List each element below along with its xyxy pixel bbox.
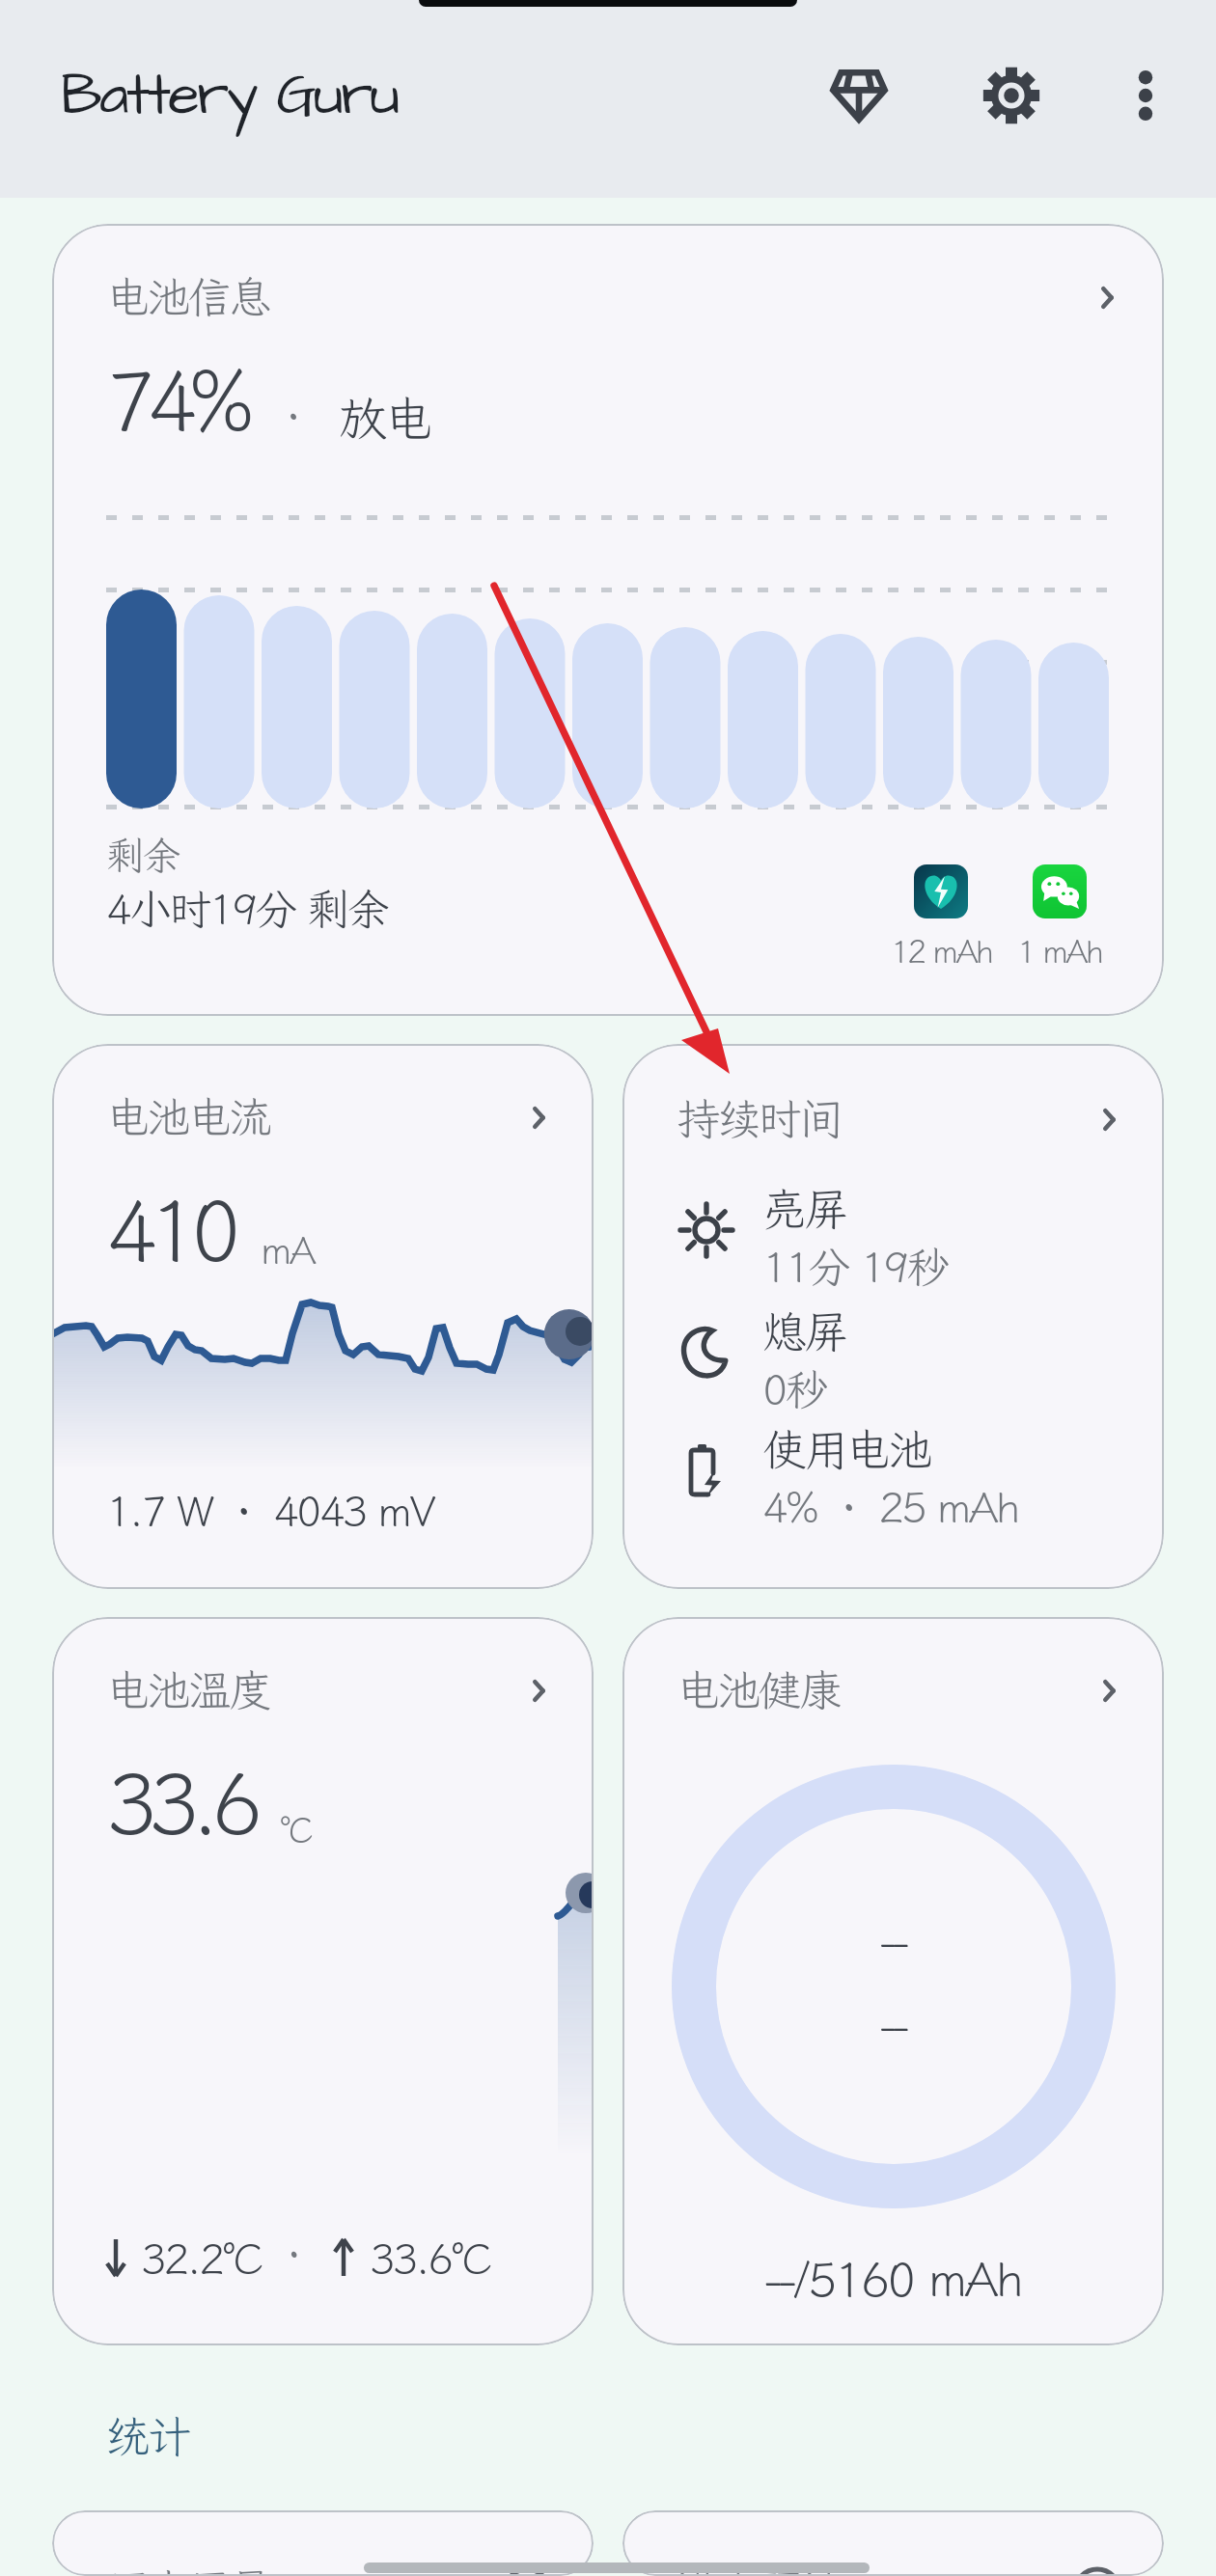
staticText: 电池信息 bbox=[106, 268, 270, 325]
staticText: 410 bbox=[106, 1173, 234, 1285]
staticText: 满电预计 bbox=[677, 2561, 841, 2576]
staticText: 12 mAh bbox=[891, 930, 992, 972]
staticText: -- bbox=[880, 1911, 907, 1970]
staticText: 放电 bbox=[339, 386, 430, 450]
staticText: 32.2ºC bbox=[141, 2231, 262, 2287]
button[interactable]: 历史用量 bbox=[52, 2510, 594, 2576]
staticText: 0秒 bbox=[762, 1361, 826, 1417]
button[interactable]: 电池电流 bbox=[52, 1044, 594, 1589]
staticText: 持续时间 bbox=[677, 1090, 841, 1147]
staticText: 统计 bbox=[105, 2407, 189, 2466]
button[interactable]: More options bbox=[1097, 47, 1194, 144]
button[interactable]: 电池信息 bbox=[52, 224, 1164, 1016]
staticText: -- bbox=[880, 1995, 907, 2054]
button[interactable]: 满电预计 bbox=[622, 2510, 1164, 2576]
staticText: mA bbox=[261, 1224, 315, 1275]
staticText: 11分 19秒 bbox=[762, 1239, 947, 1295]
staticText: 1.7 W · 4043 mV bbox=[106, 1483, 434, 1539]
staticText: 33.6 bbox=[106, 1746, 255, 1858]
staticText: 74% bbox=[106, 344, 246, 453]
staticText: 熄屏 bbox=[762, 1302, 846, 1361]
button[interactable]: 电池健康 bbox=[622, 1617, 1164, 2345]
staticText: 使用电池 bbox=[762, 1420, 930, 1479]
staticText: 33.6ºC bbox=[370, 2231, 490, 2287]
button[interactable]: Settings bbox=[953, 38, 1069, 153]
staticText: 剩余 bbox=[106, 830, 179, 881]
staticText: 电池温度 bbox=[106, 1661, 270, 1718]
staticText: · bbox=[288, 2231, 298, 2279]
button[interactable]: Premium bbox=[801, 38, 917, 153]
staticText: 历史用量 bbox=[106, 2561, 270, 2576]
staticText: 亮屏 bbox=[762, 1180, 846, 1239]
staticText: Battery Guru bbox=[61, 56, 398, 136]
staticText: · bbox=[287, 391, 298, 442]
staticText: °C bbox=[280, 1807, 311, 1852]
staticText: 4% · 25 mAh bbox=[762, 1479, 1019, 1535]
staticText: --/5160 mAh bbox=[622, 2246, 1164, 2310]
button[interactable]: 电池温度 bbox=[52, 1617, 594, 2345]
button[interactable]: 持续时间 bbox=[622, 1044, 1164, 1589]
staticText: 电池健康 bbox=[677, 1661, 841, 1718]
staticText: 4小时19分 剩余 bbox=[106, 881, 388, 937]
staticText: 电池电流 bbox=[106, 1088, 270, 1145]
staticText: 1 mAh bbox=[1017, 930, 1102, 972]
